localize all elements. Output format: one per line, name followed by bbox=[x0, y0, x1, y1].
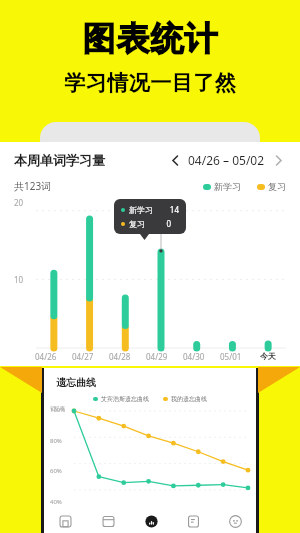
staticText: 0 bbox=[157, 218, 171, 229]
staticText: 记忆率 bbox=[50, 405, 65, 411]
button[interactable]: Cards bbox=[87, 509, 130, 533]
staticText: 我的遗忘曲线 bbox=[171, 395, 207, 403]
staticText: 04/27 bbox=[72, 351, 94, 362]
staticText: 新学习 bbox=[129, 205, 153, 215]
button[interactable]: Next week bbox=[270, 152, 286, 168]
button[interactable]: 04/26 – 05/02 bbox=[188, 152, 265, 168]
staticText: 共123词 bbox=[14, 179, 52, 193]
button[interactable]: Previous week bbox=[167, 152, 183, 168]
staticText: 04/30 bbox=[183, 351, 205, 362]
staticText: 04/28 bbox=[109, 351, 131, 362]
staticText: 100% bbox=[50, 406, 66, 414]
staticText: 遗忘曲线 bbox=[56, 376, 96, 389]
staticText: 04/29 bbox=[146, 351, 168, 362]
staticText: 本周单词学习量 bbox=[14, 152, 105, 168]
staticText: 80% bbox=[50, 437, 62, 445]
staticText: 40% bbox=[50, 498, 62, 506]
staticText: 复习 bbox=[268, 181, 286, 192]
staticText: 图表统计 bbox=[82, 18, 218, 60]
staticText: 14 bbox=[165, 204, 179, 215]
button[interactable]: Profile bbox=[214, 509, 256, 533]
button[interactable]: Save bbox=[44, 509, 87, 533]
staticText: 艾宾浩斯遗忘曲线 bbox=[101, 395, 149, 403]
staticText: 05/01 bbox=[220, 351, 242, 362]
staticText: 新学习 bbox=[214, 181, 241, 192]
button[interactable]: Statistics bbox=[130, 509, 172, 533]
staticText: 今天 bbox=[260, 351, 276, 361]
staticText: 20 bbox=[14, 197, 24, 208]
staticText: 复习 bbox=[129, 219, 145, 229]
staticText: 60% bbox=[50, 467, 62, 475]
staticText: 10 bbox=[14, 274, 24, 285]
staticText: 学习情况一目了然 bbox=[64, 70, 236, 96]
staticText: 04/26 bbox=[35, 351, 57, 362]
button[interactable]: Notes bbox=[172, 509, 214, 533]
